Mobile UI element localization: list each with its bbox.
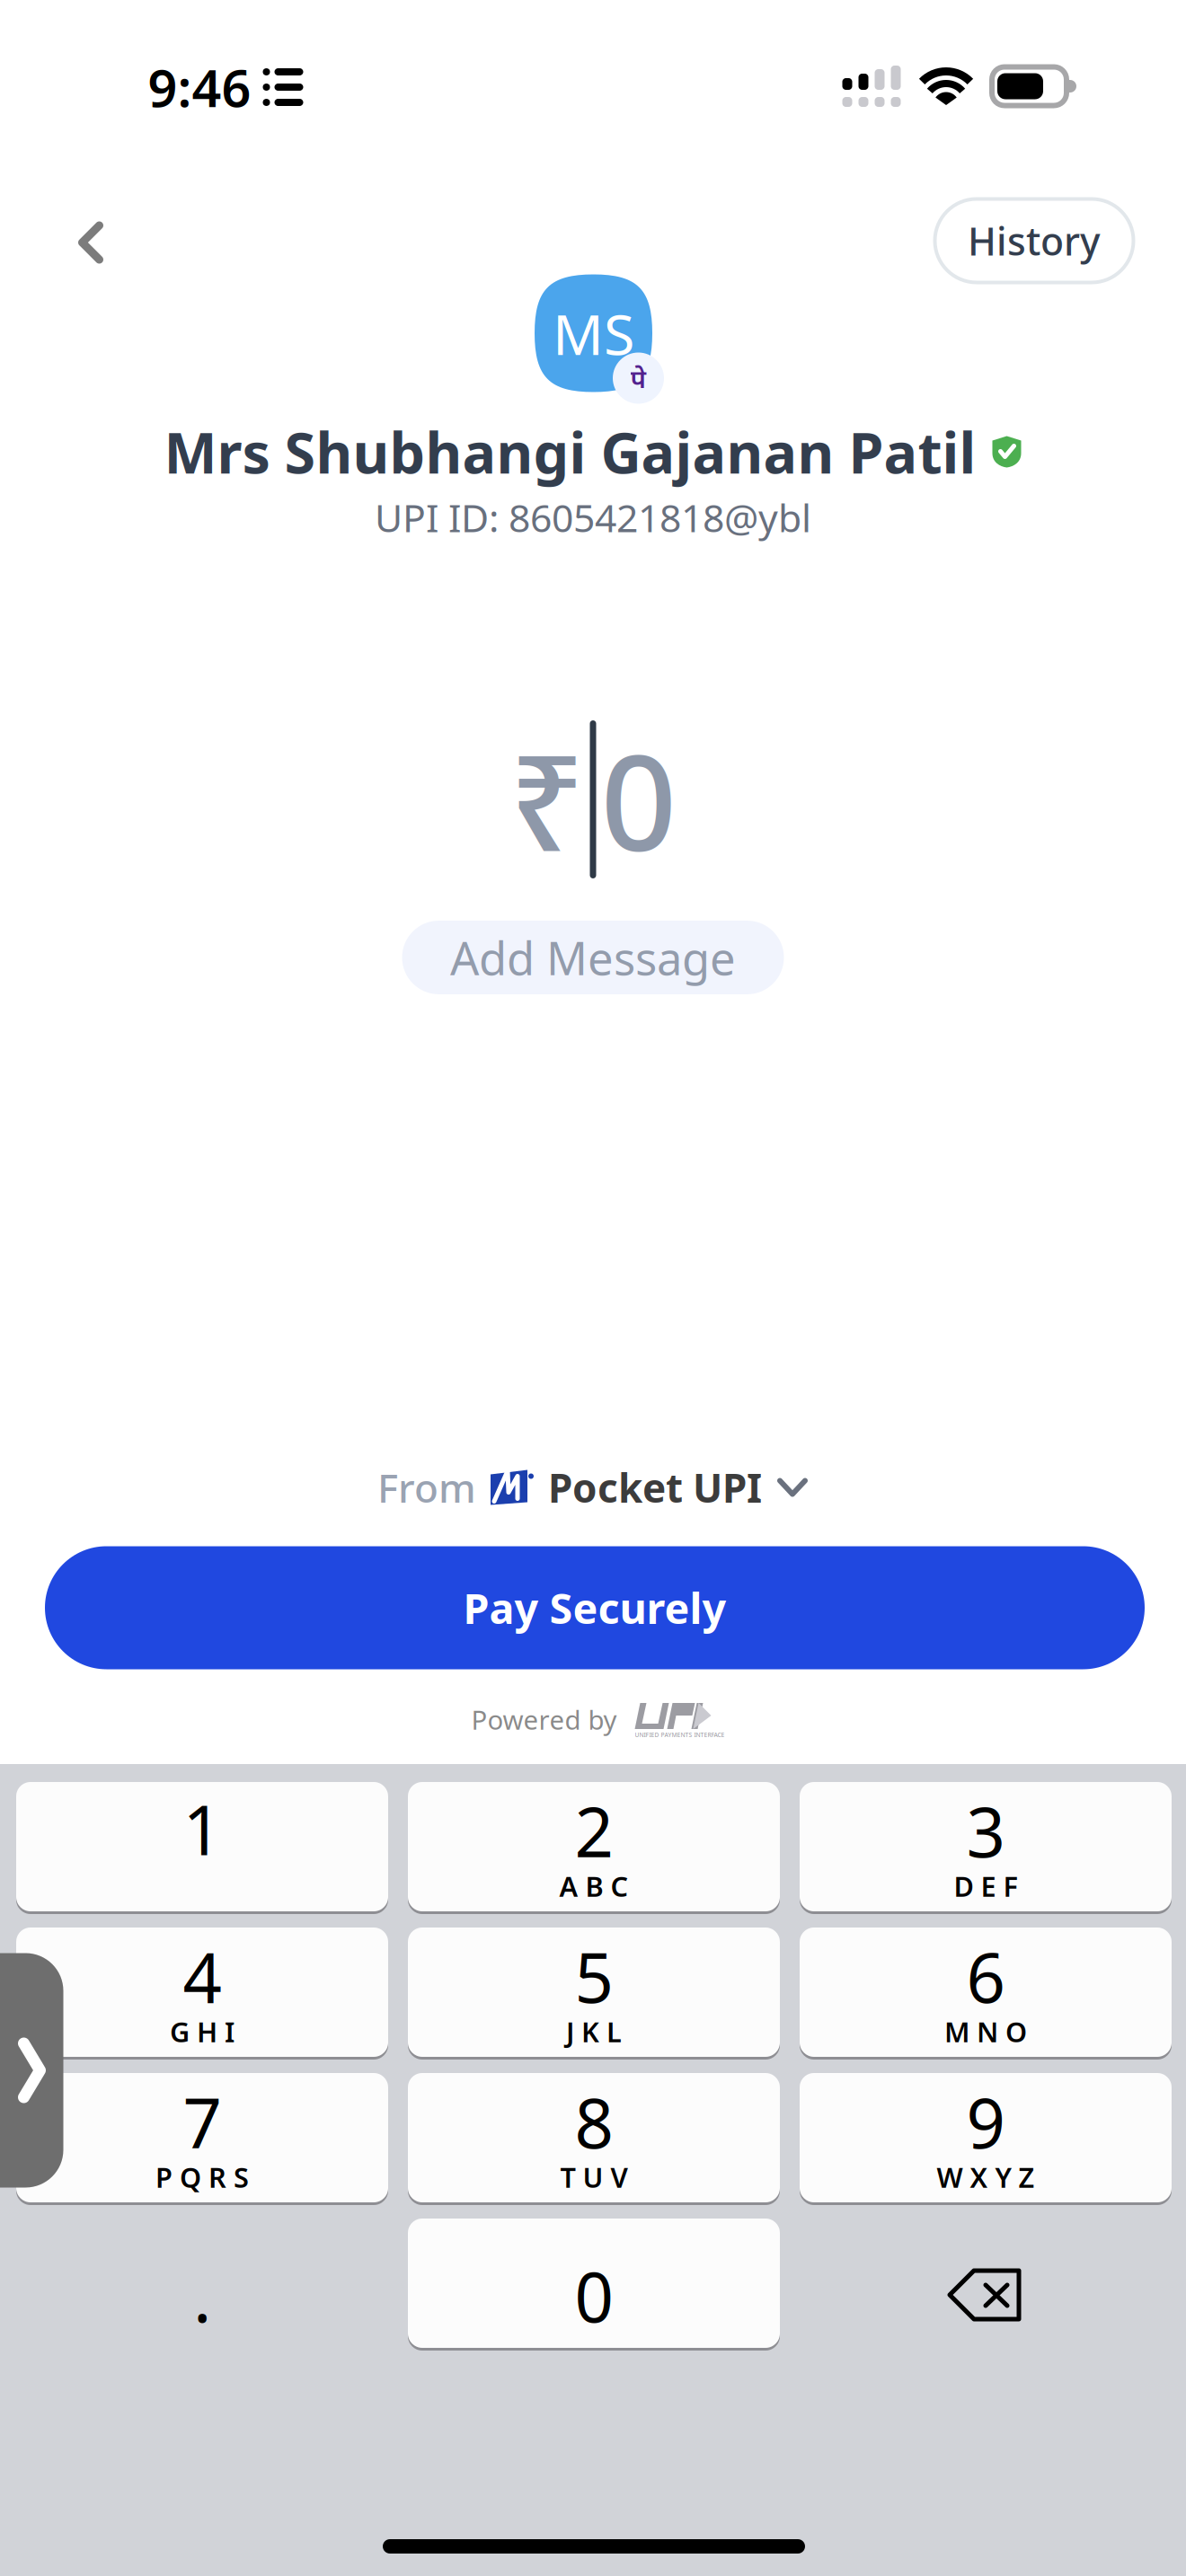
staticText: पे xyxy=(630,361,646,396)
staticText: O xyxy=(1005,2013,1027,2050)
staticText: History xyxy=(968,215,1101,266)
button[interactable]: Open drawer xyxy=(0,1953,63,2188)
button[interactable]: Pay Securely xyxy=(45,1546,1145,1669)
staticText: D xyxy=(954,1868,974,1904)
staticText: 0 xyxy=(575,2250,613,2341)
staticText: V xyxy=(611,2159,628,2195)
staticText: 5 xyxy=(575,1931,613,2021)
staticText: Pay Securely xyxy=(463,1580,726,1636)
button[interactable]: Add Message xyxy=(402,921,784,994)
staticText: 1 xyxy=(183,1783,221,1874)
staticText: F xyxy=(1003,1868,1018,1904)
staticText: U xyxy=(583,2159,603,2195)
staticText: P xyxy=(155,2159,173,2195)
staticText: N xyxy=(977,2013,998,2050)
staticText: Powered by xyxy=(471,1702,617,1737)
staticText: X xyxy=(970,2159,988,2195)
button[interactable]: 5 xyxy=(408,1926,780,2059)
staticText: K xyxy=(581,2013,599,2050)
staticText: 9 xyxy=(966,2076,1005,2167)
staticText: 3 xyxy=(966,1785,1005,1876)
staticText: C xyxy=(611,1868,628,1904)
button[interactable]: 2 xyxy=(408,1780,780,1913)
staticText: L xyxy=(606,2013,622,2050)
button[interactable]: 3 xyxy=(800,1780,1172,1913)
button[interactable]: 6 xyxy=(800,1926,1172,2059)
button[interactable]: 8 xyxy=(408,2071,780,2204)
button[interactable]: . xyxy=(16,2217,388,2350)
staticText: MS xyxy=(553,296,634,371)
staticText: 0 xyxy=(601,711,677,888)
button[interactable]: 7 xyxy=(16,2071,388,2204)
staticText: M xyxy=(944,2013,969,2050)
staticText: T xyxy=(560,2159,575,2195)
staticText: UPI ID: 8605421818@ybl xyxy=(375,492,811,543)
staticText: Add Message xyxy=(450,927,736,988)
staticText: E xyxy=(981,1868,996,1904)
staticText: Pocket UPI xyxy=(548,1461,762,1514)
staticText: . xyxy=(193,2250,211,2341)
staticText: B xyxy=(585,1868,603,1904)
staticText: G xyxy=(170,2013,190,2050)
button[interactable]: 9 xyxy=(800,2071,1172,2204)
staticText: Z xyxy=(1018,2159,1035,2195)
staticText: 2 xyxy=(575,1785,613,1876)
button[interactable]: Delete xyxy=(800,2217,1172,2350)
staticText: A xyxy=(559,1868,578,1904)
staticText: Y xyxy=(995,2159,1011,2195)
button[interactable]: 4 xyxy=(16,1926,388,2059)
staticText: H xyxy=(197,2013,217,2050)
staticText: J xyxy=(566,2013,574,2050)
button[interactable]: Back xyxy=(46,198,136,287)
staticText: 6 xyxy=(966,1931,1005,2021)
staticText: 9:46 xyxy=(148,53,251,121)
staticText: R xyxy=(208,2159,226,2195)
staticText: From xyxy=(377,1461,476,1514)
staticText: 7 xyxy=(183,2076,221,2167)
staticText: I xyxy=(225,2013,235,2050)
button[interactable]: 1 xyxy=(16,1780,388,1913)
button[interactable]: History xyxy=(935,199,1133,282)
staticText: Q xyxy=(180,2159,201,2195)
staticText: Mrs Shubhangi Gajanan Patil xyxy=(164,414,976,489)
staticText: ₹ xyxy=(509,711,585,888)
staticText: S xyxy=(234,2159,249,2195)
staticText: UNIFIED PAYMENTS INTERFACE xyxy=(635,1731,725,1739)
staticText: W xyxy=(937,2159,963,2195)
staticText: 8 xyxy=(575,2076,613,2167)
button[interactable]: 0 xyxy=(408,2217,780,2350)
staticText: 4 xyxy=(183,1931,221,2021)
